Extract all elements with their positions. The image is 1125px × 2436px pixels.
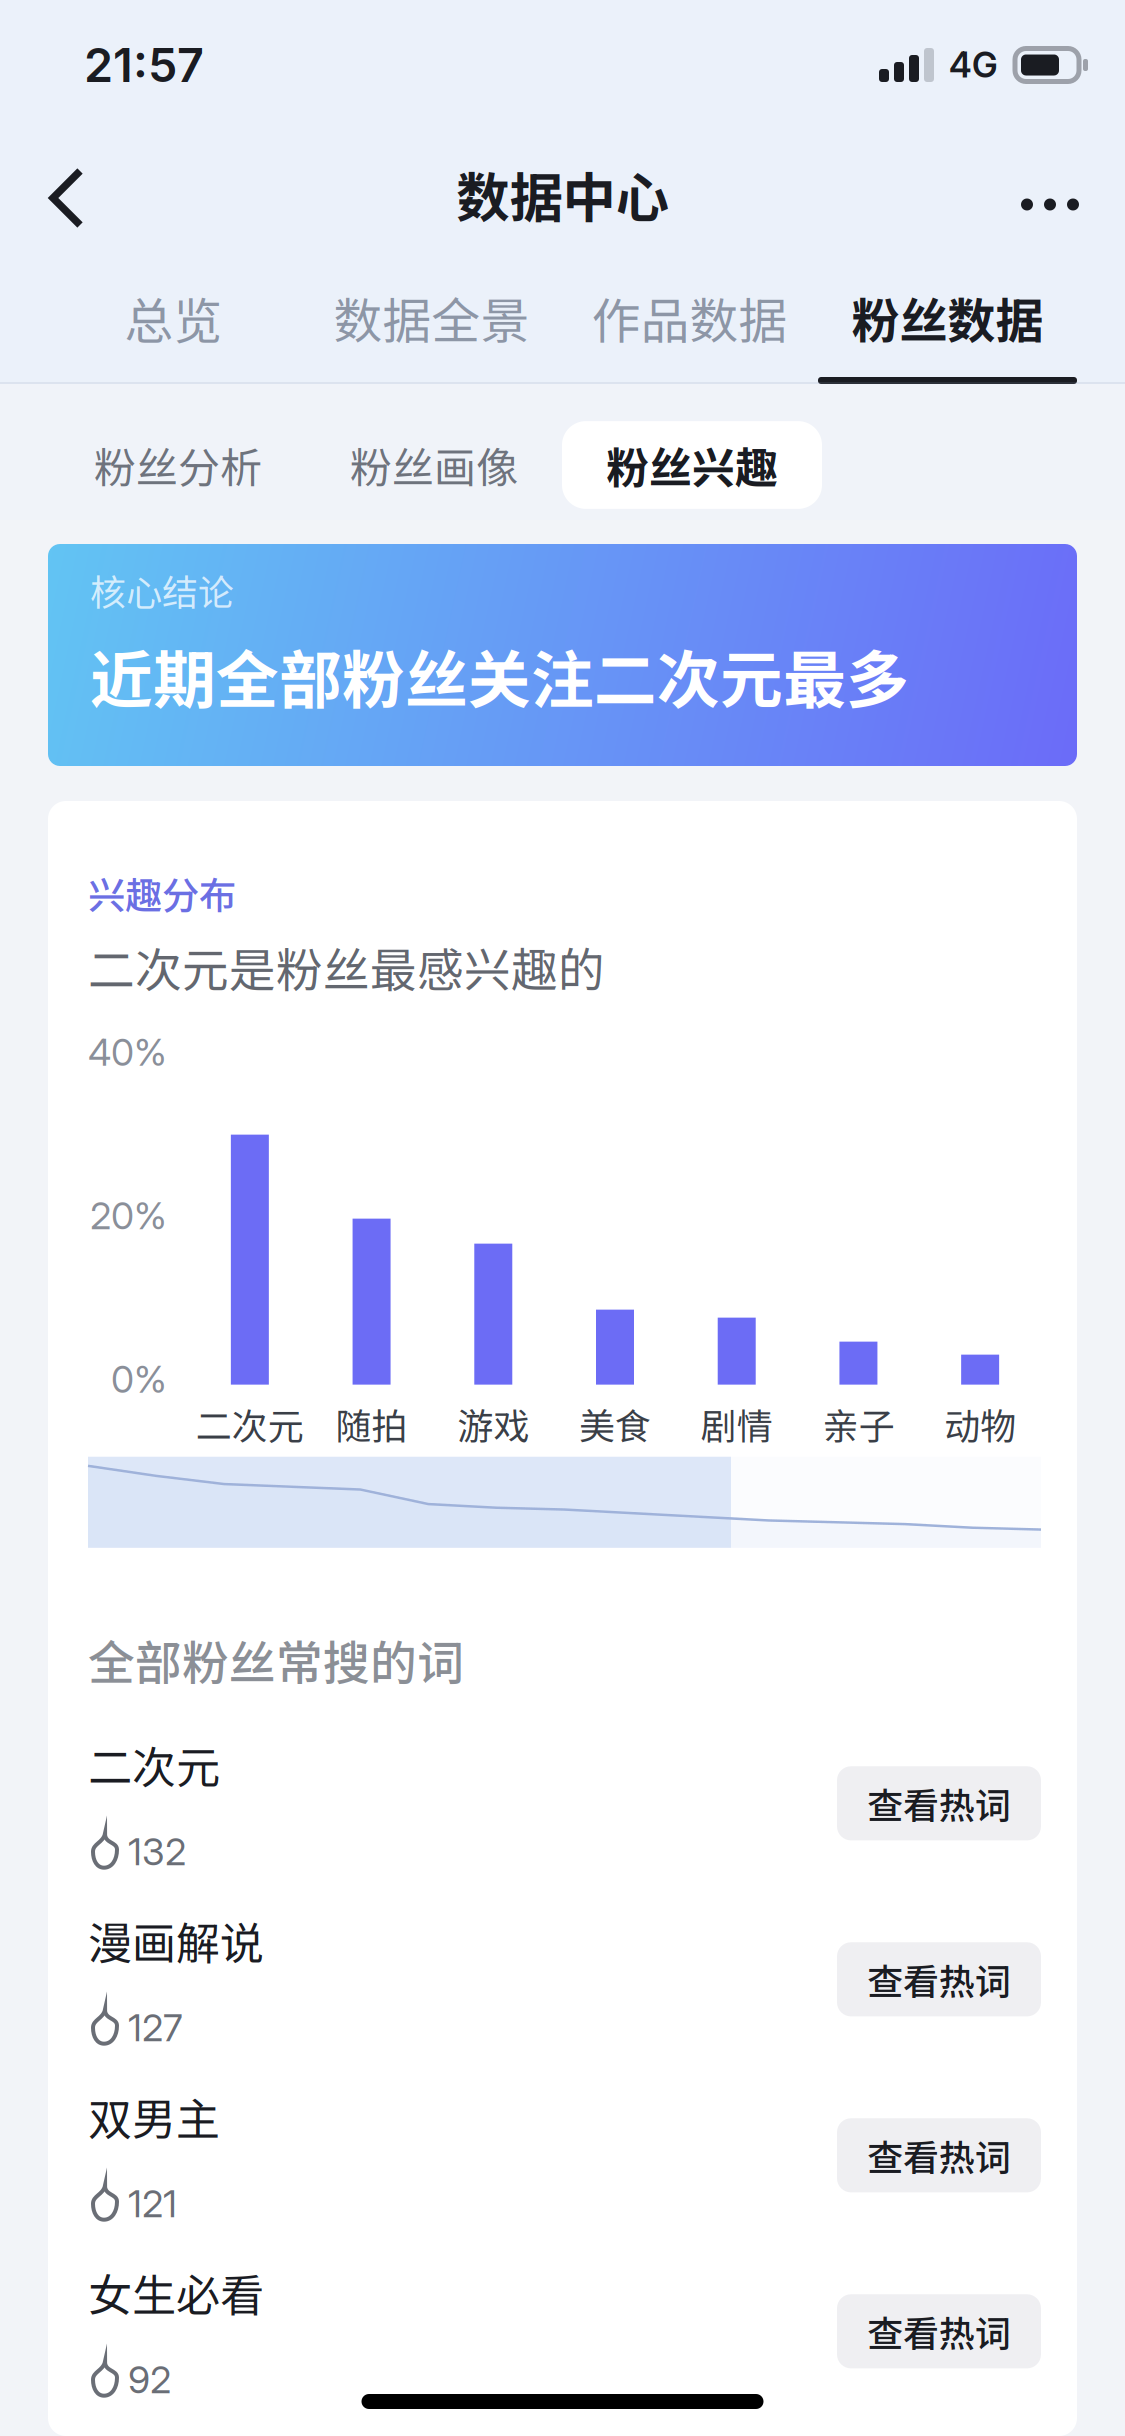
staticText: 0% bbox=[111, 1356, 167, 1402]
staticText: 查看热词 bbox=[867, 1953, 1011, 2005]
button[interactable]: 更多 bbox=[994, 119, 1106, 268]
staticText: 兴趣分布 bbox=[88, 866, 236, 920]
staticText: 40% bbox=[88, 1030, 167, 1075]
button[interactable]: 返回 bbox=[34, 130, 134, 258]
staticText: 女生必看 bbox=[88, 2260, 264, 2324]
button[interactable]: 总览 bbox=[44, 258, 302, 384]
button[interactable]: 查看热词 bbox=[837, 2118, 1041, 2192]
staticText: 127 bbox=[128, 2005, 183, 2050]
staticText: 总览 bbox=[124, 282, 222, 353]
button[interactable]: 粉丝兴趣 bbox=[562, 421, 822, 509]
button[interactable]: 粉丝画像 bbox=[306, 422, 562, 508]
staticText: 查看热词 bbox=[867, 2129, 1011, 2181]
staticText: 粉丝分析 bbox=[94, 435, 262, 495]
staticText: 动物 bbox=[944, 1398, 1016, 1450]
staticText: 近期全部粉丝关注二次元最多 bbox=[90, 630, 909, 721]
staticText: 20% bbox=[90, 1193, 167, 1238]
staticText: 二次元 bbox=[88, 1732, 220, 1796]
staticText: 查看热词 bbox=[867, 2305, 1011, 2357]
staticText: 亲子 bbox=[822, 1398, 894, 1450]
staticText: 数据中心 bbox=[456, 155, 668, 233]
button[interactable]: 查看热词 bbox=[837, 1942, 1041, 2016]
button[interactable]: 粉丝分析 bbox=[50, 422, 306, 508]
staticText: 双男主 bbox=[88, 2084, 220, 2148]
button[interactable]: 查看热词 bbox=[837, 1766, 1041, 1840]
staticText: 121 bbox=[128, 2181, 177, 2226]
staticText: 游戏 bbox=[457, 1398, 529, 1450]
staticText: 漫画解说 bbox=[88, 1908, 264, 1972]
staticText: 作品数据 bbox=[591, 282, 787, 353]
staticText: 全部粉丝常搜的词 bbox=[88, 1626, 464, 1693]
staticText: 核心结论 bbox=[90, 564, 234, 616]
staticText: 4G bbox=[949, 44, 998, 86]
staticText: 二次元 bbox=[196, 1398, 304, 1450]
staticText: 剧情 bbox=[701, 1398, 773, 1450]
staticText: 查看热词 bbox=[867, 1777, 1011, 1829]
staticText: 粉丝画像 bbox=[350, 435, 518, 495]
staticText: 二次元是粉丝最感兴趣的 bbox=[88, 933, 605, 1001]
staticText: 美食 bbox=[579, 1398, 651, 1450]
button[interactable]: 查看热词 bbox=[837, 2294, 1041, 2368]
staticText: 粉丝兴趣 bbox=[606, 434, 778, 496]
staticText: 21:57 bbox=[84, 37, 204, 93]
staticText: 数据全景 bbox=[333, 282, 529, 353]
button[interactable]: 粉丝数据 bbox=[818, 258, 1076, 384]
button[interactable]: 数据全景 bbox=[302, 258, 560, 384]
staticText: 92 bbox=[128, 2357, 171, 2402]
staticText: 粉丝数据 bbox=[851, 283, 1043, 352]
staticText: 132 bbox=[128, 1829, 186, 1874]
staticText: 随拍 bbox=[336, 1398, 408, 1450]
button[interactable]: 作品数据 bbox=[560, 258, 818, 384]
